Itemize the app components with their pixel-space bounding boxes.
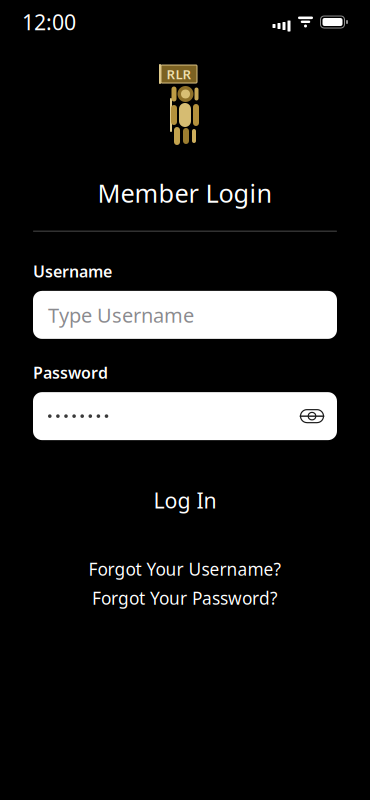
- staticText: Type Username: [48, 302, 194, 328]
- staticText: Member Login: [97, 176, 272, 210]
- button[interactable]: Log In: [85, 486, 285, 514]
- button[interactable]: Forgot Your Username?: [65, 558, 305, 580]
- staticText: RLR: [166, 65, 191, 83]
- staticText: Forgot Your Password?: [92, 587, 278, 610]
- staticText: Forgot Your Username?: [88, 558, 281, 581]
- staticText: Username: [33, 261, 112, 282]
- staticText: Password: [33, 362, 108, 383]
- button[interactable]: Type Username: [33, 291, 337, 339]
- button[interactable]: Forgot Your Password?: [65, 587, 305, 609]
- staticText: 12:00: [22, 8, 76, 36]
- staticText: Log In: [153, 486, 216, 514]
- button[interactable]: Show password: [295, 399, 329, 433]
